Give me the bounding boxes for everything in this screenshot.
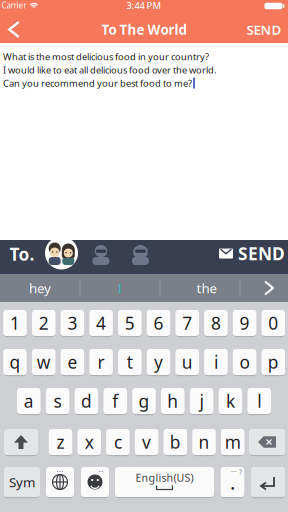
button[interactable]: d [75,387,98,415]
staticText: z [56,430,64,453]
button[interactable]: s [46,387,69,415]
staticText: q [9,350,20,373]
button[interactable]: v [135,428,158,456]
staticText: k [226,389,235,412]
button[interactable]: 2 [32,309,55,337]
staticText: f [112,389,118,412]
staticText: h [167,389,178,412]
button[interactable]: b [164,428,187,456]
button[interactable] [46,466,74,498]
button[interactable] [251,466,285,498]
button[interactable]: n [192,428,216,456]
staticText: 0 [268,311,278,334]
button[interactable]: r [89,348,113,376]
staticText: 3 [67,311,77,334]
button[interactable] [91,243,111,265]
staticText: I would like to eat all delicious food o… [3,64,217,76]
button[interactable]: c [106,428,130,456]
staticText: g [138,389,149,412]
button[interactable]: z [49,428,72,456]
staticText: o [240,350,250,373]
staticText: r [98,350,105,373]
button[interactable]: m [221,428,244,456]
button[interactable] [254,274,284,302]
button[interactable]: . [221,466,244,498]
button[interactable]: Sym [4,466,40,498]
button[interactable]: w [32,348,55,376]
button[interactable]: hey [1,274,79,302]
button[interactable]: 5 [118,309,142,337]
staticText: j [200,389,204,412]
button[interactable]: a [17,387,40,415]
staticText: u [182,350,193,373]
button[interactable] [45,236,78,269]
staticText: English(US) [135,470,193,485]
staticText: l [257,389,261,412]
staticText: x [85,430,94,453]
button[interactable]: 3 [61,309,84,337]
button[interactable]: t [118,348,142,376]
staticText: y [154,350,163,373]
staticText: the [196,279,217,297]
button[interactable]: 0 [262,309,285,337]
button[interactable] [4,428,38,456]
button[interactable]: 1 [3,309,27,337]
button[interactable]: f [103,387,127,415]
button[interactable]: i [204,348,228,376]
button[interactable] [130,243,150,265]
button[interactable]: English(US) [115,466,214,498]
button[interactable]: SEND [219,242,285,265]
staticText: w [37,350,51,373]
button[interactable]: 7 [175,309,199,337]
button[interactable]: o [233,348,256,376]
button[interactable]: SEND [244,16,284,42]
staticText: SEND [246,21,281,38]
staticText: a [24,389,34,412]
button[interactable]: p [262,348,285,376]
button[interactable] [2,16,26,42]
staticText: 7 [182,311,192,334]
button[interactable]: the [168,274,246,302]
staticText: hey [29,279,51,297]
staticText: v [142,430,151,453]
staticText: m [225,430,241,453]
button[interactable]: k [219,387,242,415]
staticText: 9 [240,311,250,334]
staticText: 6 [153,311,163,334]
button[interactable]: u [175,348,199,376]
button[interactable]: y [147,348,170,376]
button[interactable]: x [77,428,101,456]
staticText: n [198,430,209,453]
staticText: Can you recommend your best food to me? [3,77,192,89]
button[interactable]: 4 [89,309,113,337]
button[interactable]: l [247,387,271,415]
button[interactable]: e [61,348,84,376]
staticText: SEND [238,242,285,265]
button[interactable]: g [132,387,156,415]
button[interactable]: I [81,274,159,302]
staticText: c [114,430,122,453]
staticText: I [117,279,122,297]
staticText: 5 [125,311,135,334]
staticText: Carrier [1,0,26,11]
button[interactable]: 8 [204,309,228,337]
button[interactable] [249,428,285,456]
staticText: p [268,350,279,373]
staticText: e [67,350,77,373]
staticText: Sym [9,473,35,491]
staticText: To. [9,242,34,265]
staticText: t [127,350,133,373]
button[interactable]: j [190,387,213,415]
staticText: b [170,430,181,453]
button[interactable]: 6 [147,309,170,337]
button[interactable]: 9 [233,309,256,337]
button[interactable]: q [3,348,27,376]
staticText: . [230,469,235,495]
staticText: 4 [96,311,106,334]
button[interactable] [81,466,109,498]
staticText: 2 [39,311,49,334]
staticText: 1 [10,311,20,334]
staticText: ? [239,468,242,476]
button[interactable]: h [161,387,185,415]
staticText: What is the most delicious food in your … [3,50,209,63]
